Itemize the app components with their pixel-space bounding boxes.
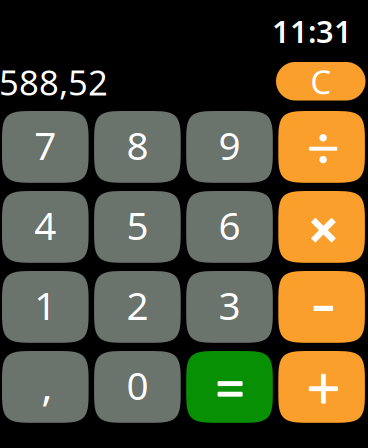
staticText: 3 — [218, 279, 240, 331]
staticText: 1 — [34, 279, 56, 331]
staticText: 7 — [34, 119, 56, 171]
button[interactable]: 4 — [2, 191, 89, 263]
button[interactable]: 8 — [94, 111, 181, 183]
button[interactable]: 2 — [94, 271, 181, 343]
button[interactable]: 7 — [2, 111, 89, 183]
staticText: C — [310, 59, 331, 103]
staticText: 588,52 — [0, 59, 108, 105]
button[interactable]: Subtract — [278, 271, 365, 343]
button[interactable]: 0 — [94, 351, 181, 423]
button[interactable]: 3 — [186, 271, 273, 343]
staticText: 0 — [126, 359, 148, 411]
staticText: 6 — [218, 199, 240, 251]
button[interactable]: C — [276, 62, 365, 100]
button[interactable]: 6 — [186, 191, 273, 263]
button[interactable]: 5 — [94, 191, 181, 263]
staticText: 8 — [126, 119, 148, 171]
staticText: 5 — [126, 199, 148, 251]
button[interactable]: Equals — [186, 351, 273, 423]
button[interactable]: Add — [278, 351, 365, 423]
button[interactable]: Divide — [278, 111, 365, 183]
staticText: 4 — [34, 199, 56, 251]
button[interactable]: Multiply — [278, 191, 365, 263]
staticText: 2 — [126, 279, 148, 331]
button[interactable]: 1 — [2, 271, 89, 343]
button[interactable]: , — [2, 351, 89, 423]
staticText: 9 — [218, 119, 240, 171]
staticText: 11:31 — [272, 11, 352, 51]
button[interactable]: 9 — [186, 111, 273, 183]
staticText: , — [41, 357, 52, 413]
